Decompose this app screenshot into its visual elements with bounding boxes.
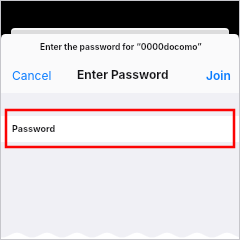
staticText: Enter the password for “0000docomo” (40, 42, 202, 52)
staticText: Enter Password (77, 67, 169, 82)
staticText: Join (206, 68, 231, 83)
button[interactable]: Join (198, 63, 239, 88)
button[interactable]: Cancel (1, 63, 60, 88)
staticText: Cancel (12, 68, 52, 83)
button[interactable]: Password (1, 116, 239, 142)
staticText: Password (12, 123, 56, 134)
